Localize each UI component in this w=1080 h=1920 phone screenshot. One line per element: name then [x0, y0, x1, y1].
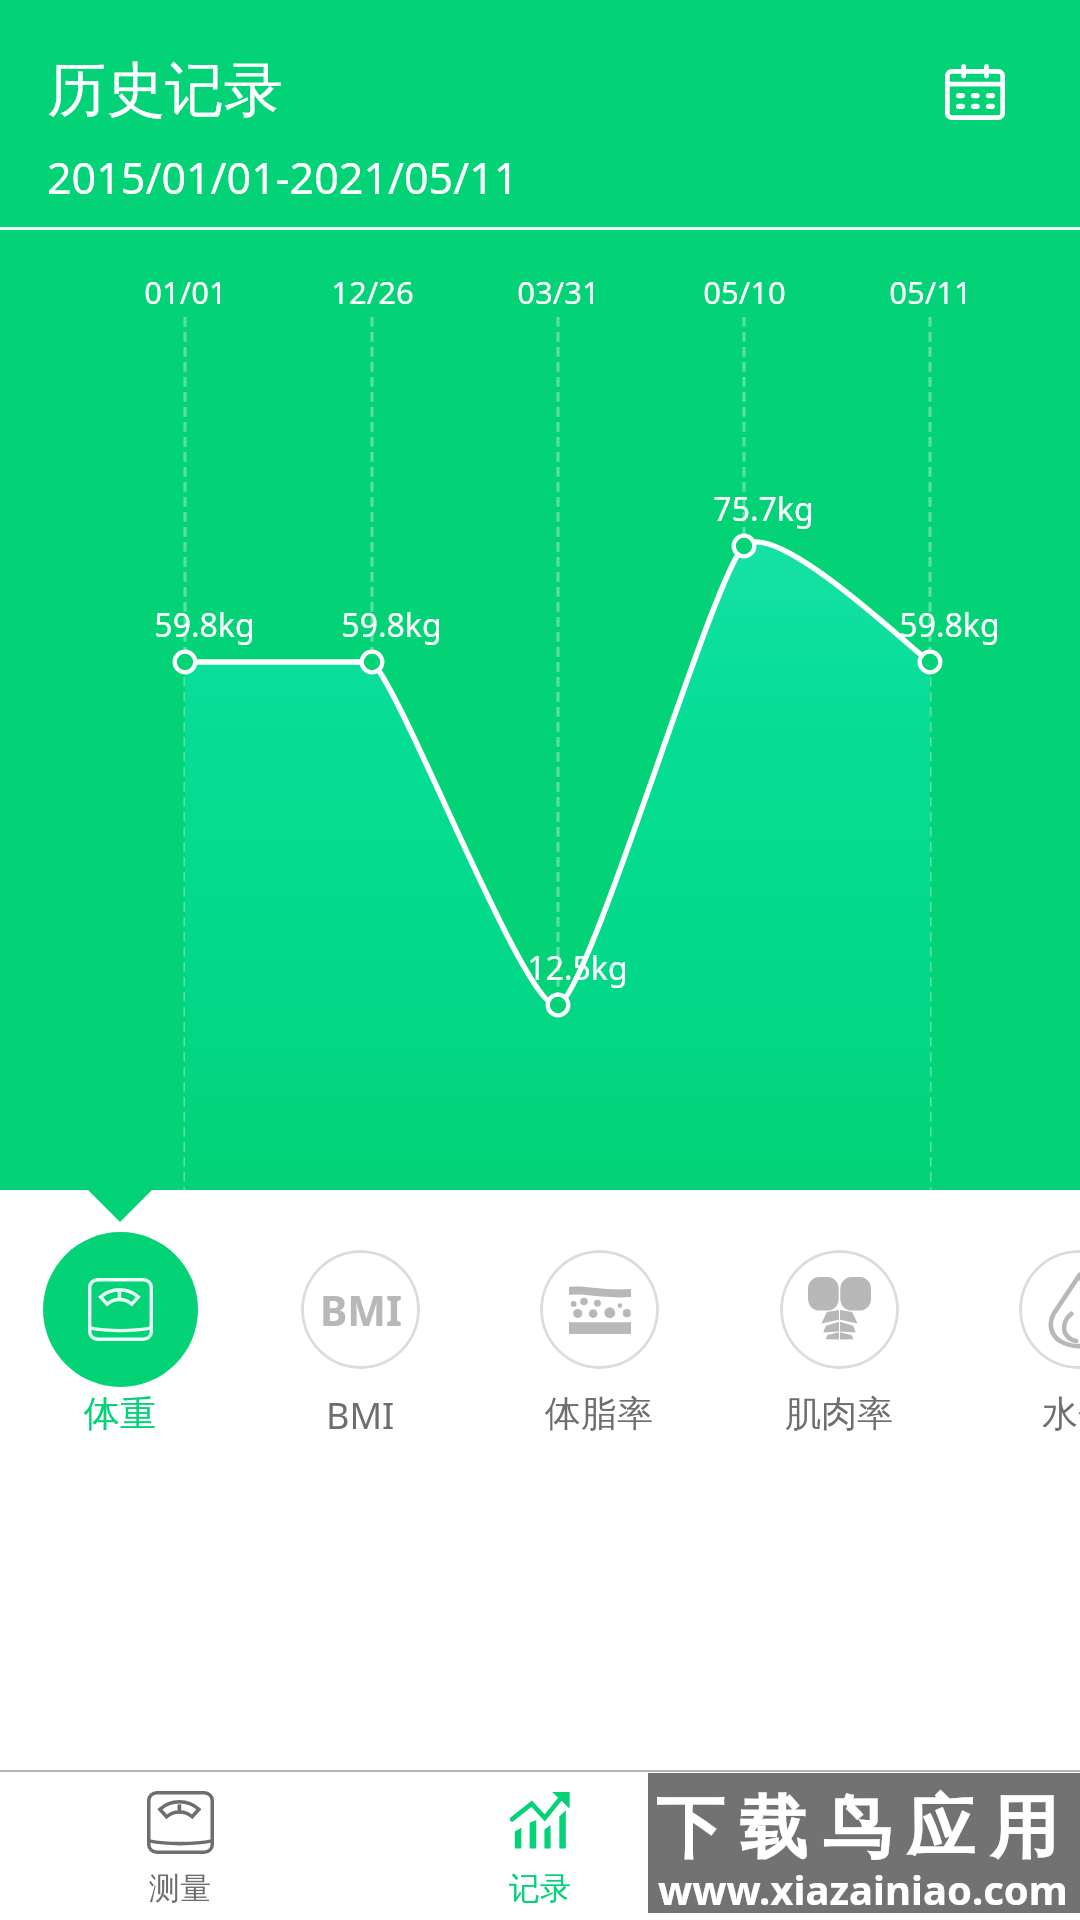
- button[interactable]: BMI: [250, 1200, 470, 1440]
- staticText: 水分: [1042, 1391, 1080, 1436]
- staticText: BMI: [320, 1282, 402, 1338]
- staticText: 59.8kg: [341, 603, 442, 647]
- staticText: 体脂率: [545, 1391, 653, 1436]
- staticText: www.xiazainiao.com: [658, 1862, 1068, 1916]
- staticText: BMI: [326, 1391, 395, 1440]
- staticText: 01/01: [144, 271, 227, 313]
- staticText: 测量: [149, 1869, 211, 1908]
- button[interactable]: Select date range: [915, 34, 1035, 154]
- button[interactable]: 水分: [968, 1200, 1080, 1440]
- staticText: 历史记录: [47, 53, 283, 127]
- button[interactable]: 肌肉率: [729, 1200, 949, 1440]
- staticText: 2015/01/01-2021/05/11: [47, 148, 519, 207]
- staticText: 肌肉率: [785, 1391, 893, 1436]
- staticText: 体重: [84, 1391, 156, 1436]
- button[interactable]: 记录: [360, 1772, 720, 1920]
- staticText: 05/10: [703, 271, 786, 313]
- staticText: 记录: [509, 1869, 571, 1908]
- staticText: 59.8kg: [899, 603, 1000, 647]
- staticText: 12/26: [331, 271, 414, 313]
- staticText: 12.5kg: [527, 946, 628, 990]
- button[interactable]: 体重: [10, 1200, 230, 1440]
- staticText: 03/31: [517, 271, 600, 313]
- button[interactable]: 体脂率: [489, 1200, 709, 1440]
- button[interactable]: 测量: [0, 1772, 360, 1920]
- staticText: 下载鸟应用: [656, 1786, 1074, 1872]
- staticText: 05/11: [889, 271, 972, 313]
- staticText: 59.8kg: [154, 603, 255, 647]
- staticText: 75.7kg: [713, 487, 814, 531]
